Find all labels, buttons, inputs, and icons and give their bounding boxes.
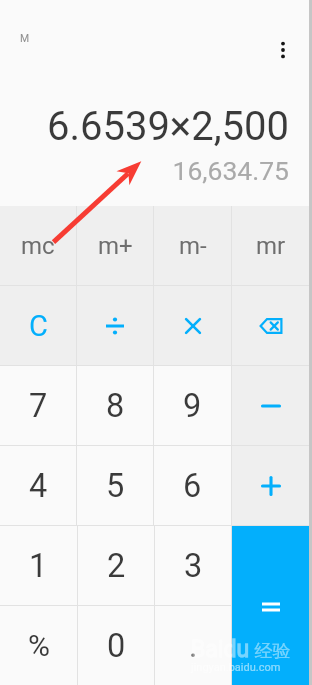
button[interactable]: 0 (78, 606, 154, 685)
button[interactable]: More options (269, 36, 297, 64)
button[interactable]: 2 (78, 526, 154, 605)
button[interactable]: 1 (0, 526, 77, 605)
button[interactable]: Minus (232, 366, 309, 445)
staticText: 6 (183, 467, 202, 505)
button[interactable]: C (0, 286, 76, 365)
button[interactable]: m+ (77, 206, 153, 285)
button[interactable]: . (155, 606, 231, 685)
staticText: 8 (106, 387, 125, 425)
button[interactable]: Equals (232, 526, 309, 685)
button[interactable]: 3 (155, 526, 231, 605)
button[interactable]: 5 (77, 446, 153, 525)
button[interactable]: Backspace (232, 286, 309, 365)
staticText: 9 (183, 387, 202, 425)
staticText: M (20, 32, 30, 44)
staticText: m+ (98, 232, 133, 260)
staticText: C (29, 309, 48, 343)
button[interactable]: mr (232, 206, 309, 285)
staticText: 4 (29, 467, 48, 505)
staticText: 7 (29, 387, 48, 425)
staticText: 经验 (250, 640, 291, 663)
staticText: 5 (106, 467, 125, 505)
button[interactable]: m- (154, 206, 231, 285)
button[interactable]: % (0, 606, 77, 685)
button[interactable]: Multiply (154, 286, 231, 365)
button[interactable]: 9 (154, 366, 231, 445)
staticText: % (28, 628, 50, 663)
button[interactable]: Plus (232, 446, 309, 525)
button[interactable]: 4 (0, 446, 76, 525)
staticText: 16,634.75 (172, 155, 289, 186)
button[interactable]: Divide (77, 286, 153, 365)
staticText: m- (179, 232, 207, 260)
staticText: 2 (107, 547, 126, 585)
button[interactable]: 7 (0, 366, 76, 445)
button[interactable]: 8 (77, 366, 153, 445)
staticText: . (189, 627, 198, 665)
staticText: jingyan.baidu.com (191, 661, 281, 674)
button[interactable]: mc (0, 206, 76, 285)
staticText: 3 (184, 547, 203, 585)
staticText: Baidu (191, 636, 250, 663)
button[interactable]: 6 (154, 446, 231, 525)
staticText: 6.6539×2,500 (46, 103, 289, 150)
staticText: mr (256, 232, 286, 260)
staticText: mc (21, 232, 55, 260)
staticText: 1 (29, 547, 48, 585)
staticText: 0 (107, 627, 126, 665)
